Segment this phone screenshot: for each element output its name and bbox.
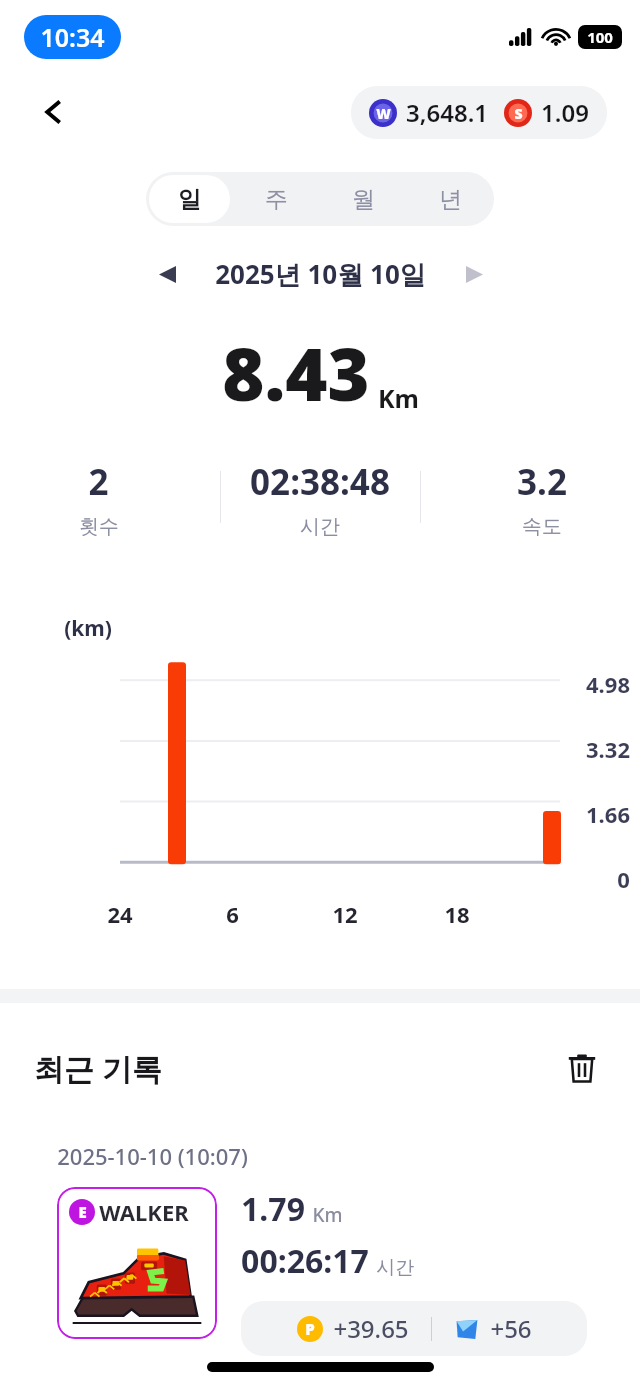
- staticText: +56: [490, 1312, 532, 1345]
- staticText: 1.79: [241, 1187, 305, 1231]
- staticText: 횟수: [79, 514, 119, 536]
- staticText: 속도: [522, 514, 562, 536]
- staticText: 10:34: [40, 20, 105, 54]
- staticText: 시간: [300, 514, 340, 536]
- staticText: 4.98: [586, 669, 630, 699]
- staticText: (km): [64, 614, 112, 643]
- staticText: 0: [617, 864, 630, 889]
- staticText: 2025-10-10 (10:07): [57, 1141, 248, 1171]
- button[interactable]: Delete records: [558, 1044, 606, 1092]
- staticText: 3,648.1: [406, 96, 488, 129]
- staticText: 100: [587, 27, 613, 47]
- button[interactable]: P: [241, 1301, 587, 1356]
- staticText: 3.2: [517, 458, 567, 506]
- staticText: 3.32: [586, 734, 630, 764]
- button[interactable]: W: [351, 86, 607, 139]
- staticText: P: [305, 1319, 315, 1339]
- staticText: Km: [312, 1202, 343, 1228]
- staticText: 2025년 10월 10일: [215, 256, 426, 292]
- staticText: 1.66: [586, 799, 630, 829]
- staticText: 8.43: [222, 324, 370, 422]
- staticText: 최근 기록: [34, 1048, 162, 1089]
- staticText: 년: [439, 185, 462, 214]
- staticText: 시간: [376, 1256, 414, 1280]
- button[interactable]: 월: [323, 175, 404, 223]
- staticText: 02:38:48: [250, 458, 390, 506]
- staticText: 18: [444, 899, 470, 929]
- staticText: 주: [265, 185, 288, 214]
- button[interactable]: 주: [236, 175, 317, 223]
- staticText: 일: [178, 185, 201, 214]
- staticText: WALKER: [99, 1197, 189, 1227]
- staticText: +39.65: [333, 1312, 409, 1345]
- staticText: 12: [332, 899, 358, 929]
- staticText: W: [376, 104, 391, 123]
- button[interactable]: 년: [410, 175, 491, 223]
- staticText: 2: [88, 458, 109, 506]
- staticText: 6: [226, 899, 239, 929]
- staticText: 00:26:17: [241, 1239, 369, 1283]
- staticText: Km: [378, 381, 419, 415]
- button[interactable]: Back: [28, 86, 80, 138]
- button[interactable]: Previous day: [145, 252, 189, 296]
- button[interactable]: Next day: [452, 252, 496, 296]
- staticText: 24: [107, 899, 133, 929]
- staticText: 월: [352, 185, 375, 214]
- staticText: E: [78, 1202, 87, 1222]
- button[interactable]: 일: [149, 175, 230, 223]
- staticText: 1.09: [541, 96, 589, 129]
- staticText: S: [514, 104, 523, 123]
- button[interactable]: 2025-10-10 (10:07): [35, 1121, 605, 1356]
